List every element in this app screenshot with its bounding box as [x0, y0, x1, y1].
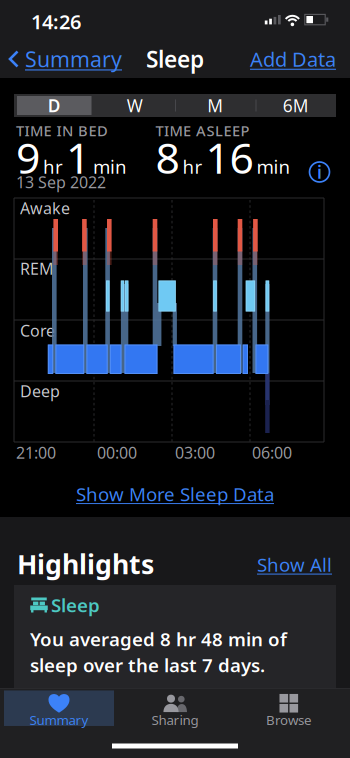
button[interactable]: Sleep: [14, 585, 336, 698]
staticText: 03:00: [175, 442, 215, 463]
button[interactable]: Add Data: [216, 46, 336, 72]
staticText: 13 Sep 2022: [16, 171, 106, 193]
staticText: 06:00: [252, 442, 292, 463]
staticText: 14:26: [31, 8, 81, 35]
staticText: min: [256, 154, 290, 179]
staticText: TIME IN BED: [16, 121, 108, 140]
staticText: sleep over the last 7 days.: [30, 653, 265, 677]
button[interactable]: W: [96, 94, 174, 116]
button[interactable]: Browse: [234, 690, 344, 726]
staticText: hr: [43, 154, 63, 179]
staticText: Sleep: [51, 593, 100, 617]
staticText: You averaged 8 hr 48 min of: [30, 627, 287, 651]
staticText: REM: [20, 258, 54, 279]
staticText: Add Data: [250, 46, 336, 72]
staticText: 00:00: [97, 442, 137, 463]
staticText: Sharing: [151, 711, 198, 729]
staticText: 9: [16, 129, 40, 186]
button[interactable]: Sharing: [120, 690, 230, 726]
staticText: 8: [155, 129, 179, 186]
staticText: 1: [66, 129, 90, 186]
staticText: Core: [20, 320, 55, 341]
button[interactable]: D: [15, 94, 93, 116]
staticText: hr: [182, 154, 202, 179]
staticText: M: [207, 94, 223, 117]
staticText: Sleep: [146, 44, 204, 74]
staticText: Summary: [25, 45, 122, 73]
staticText: 16: [205, 129, 253, 186]
button[interactable]: Show More Sleep Data: [76, 482, 274, 506]
button[interactable]: 6M: [257, 94, 335, 116]
button[interactable]: Back: [8, 45, 148, 73]
staticText: min: [93, 154, 127, 179]
staticText: Highlights: [17, 546, 154, 582]
staticText: Show More Sleep Data: [76, 482, 274, 506]
button[interactable]: Summary: [4, 690, 114, 726]
staticText: Browse: [266, 711, 312, 729]
staticText: Deep: [20, 380, 60, 402]
staticText: W: [127, 94, 143, 117]
staticText: i: [317, 160, 322, 183]
button[interactable]: M: [176, 94, 254, 116]
staticText: Show All: [257, 552, 332, 577]
staticText: Awake: [20, 197, 70, 219]
staticText: 21:00: [16, 442, 56, 463]
button[interactable]: Show All: [212, 552, 332, 577]
staticText: TIME ASLEEP: [155, 121, 249, 140]
staticText: Summary: [29, 711, 88, 729]
staticText: 6M: [283, 94, 309, 117]
staticText: D: [48, 94, 61, 117]
button[interactable]: About Sleep: [308, 160, 330, 183]
